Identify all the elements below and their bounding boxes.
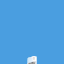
button[interactable]: Continue	[27, 56, 37, 64]
